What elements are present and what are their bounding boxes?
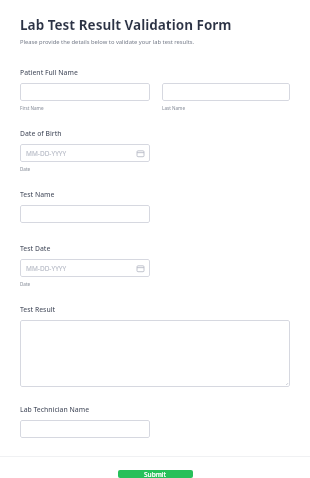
staticText: Test Name: [20, 190, 55, 199]
staticText: Date: [20, 166, 31, 172]
staticText: Test Date: [20, 244, 51, 253]
button[interactable]: [20, 320, 290, 387]
staticText: Lab Technician Name: [20, 405, 90, 414]
staticText: MM-DD-YYYY: [26, 264, 67, 273]
staticText: Patient Full Name: [20, 68, 78, 77]
staticText: Test Result: [20, 305, 56, 314]
staticText: MM-DD-YYYY: [26, 149, 67, 158]
staticText: Please provide the details below to vali…: [20, 38, 195, 46]
staticText: Date: [20, 281, 31, 287]
button[interactable]: [20, 205, 150, 223]
button[interactable]: [20, 420, 150, 438]
staticText: Submit: [144, 470, 167, 478]
staticText: First Name: [20, 105, 44, 111]
button[interactable]: [20, 83, 150, 101]
button[interactable]: Submit: [118, 470, 193, 478]
button[interactable]: MM-DD-YYYY: [20, 259, 150, 277]
staticText: Last Name: [162, 105, 185, 111]
staticText: Lab Test Result Validation Form: [20, 16, 232, 34]
button[interactable]: MM-DD-YYYY: [20, 144, 150, 162]
staticText: Date of Birth: [20, 129, 62, 138]
button[interactable]: [162, 83, 290, 101]
